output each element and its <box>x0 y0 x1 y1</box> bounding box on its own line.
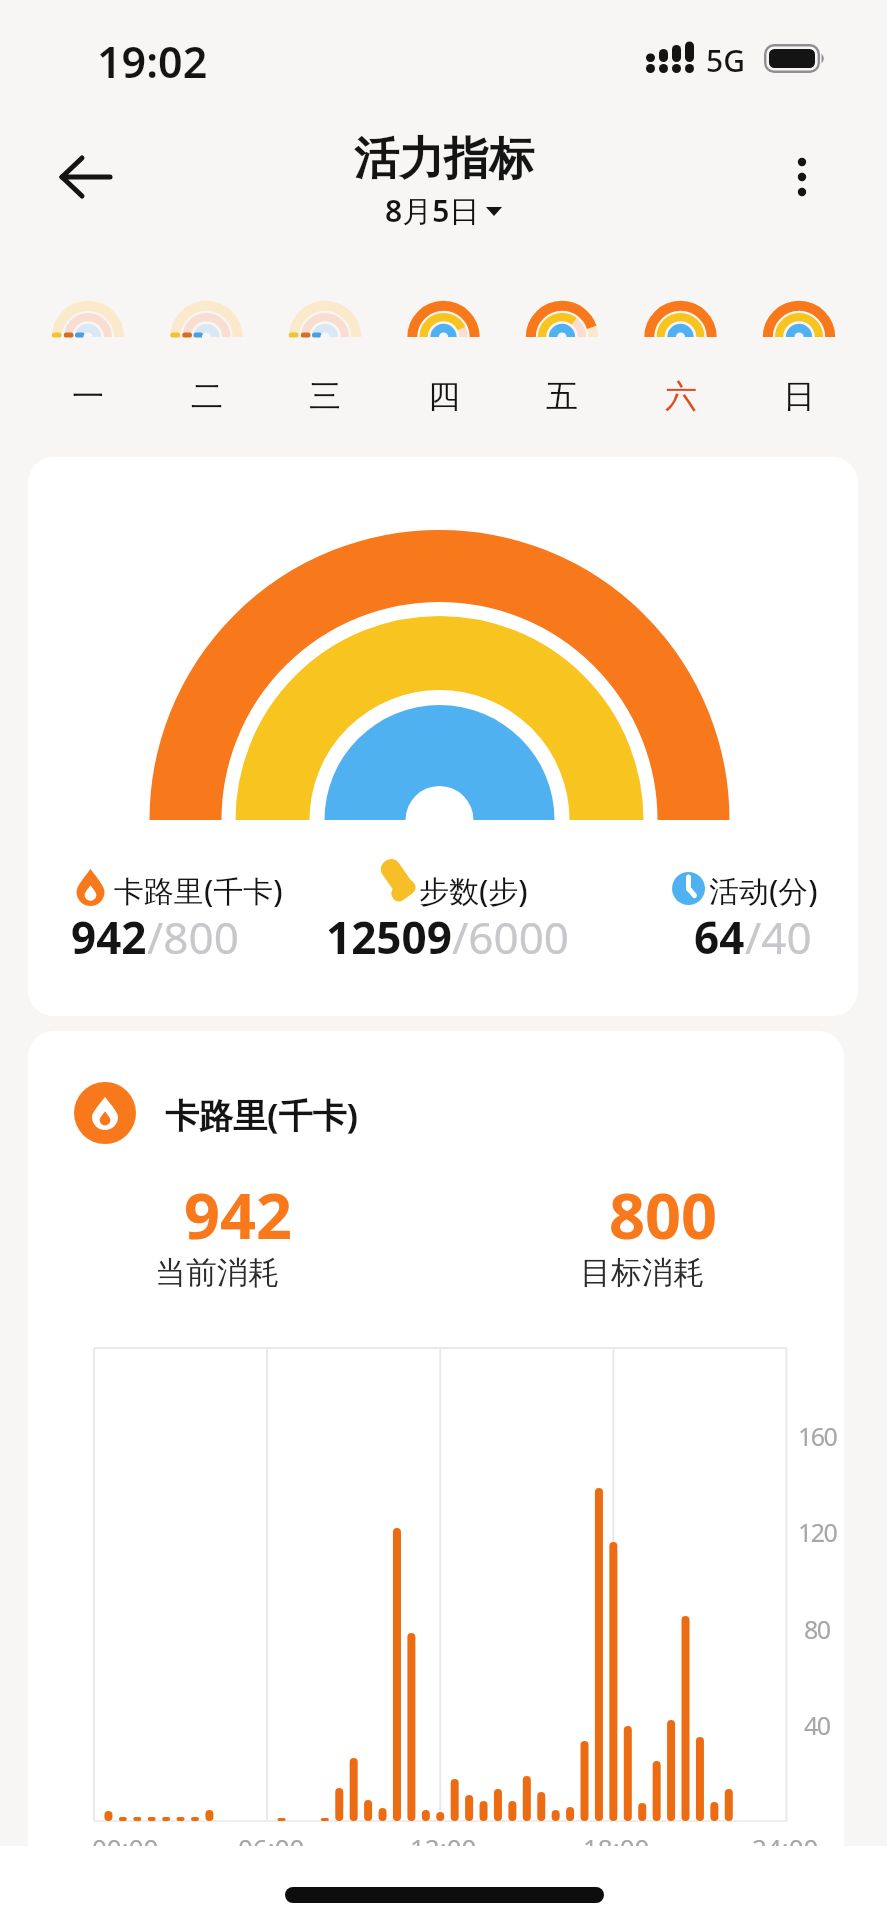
button[interactable]: 六 <box>641 374 721 418</box>
staticText: 目标消耗 <box>580 1253 704 1292</box>
staticText: 19:02 <box>97 32 208 91</box>
staticText: 06:00 <box>238 1830 305 1865</box>
staticText: 942 <box>71 907 147 967</box>
staticText: 80 <box>804 1612 830 1646</box>
staticText: 18:00 <box>583 1830 650 1865</box>
button[interactable]: 四 <box>404 374 484 418</box>
staticText: 卡路里(千卡) <box>114 870 283 911</box>
staticText: 12:00 <box>410 1830 477 1865</box>
staticText: 5G <box>706 40 745 81</box>
button[interactable] <box>778 150 826 206</box>
staticText: 当前消耗 <box>155 1253 279 1292</box>
staticText: 活动(分) <box>709 870 818 911</box>
button[interactable]: 五 <box>522 374 602 418</box>
staticText: 卡路里(千卡) <box>165 1092 359 1138</box>
staticText: 160 <box>798 1419 837 1453</box>
staticText: 三 <box>309 376 341 416</box>
staticText: 步数(步) <box>419 870 528 911</box>
button[interactable] <box>48 146 120 208</box>
button[interactable]: 三 <box>285 374 365 418</box>
staticText: 120 <box>798 1515 837 1549</box>
staticText: 00:00 <box>92 1830 159 1865</box>
button[interactable]: 日 <box>759 374 839 418</box>
staticText: /6000 <box>452 907 570 967</box>
button[interactable]: 8月5日 <box>385 190 502 231</box>
button[interactable]: 二 <box>167 374 247 418</box>
staticText: 日 <box>783 376 815 416</box>
staticText: 一 <box>72 376 104 416</box>
staticText: 五 <box>546 376 578 416</box>
staticText: 24:00 <box>752 1830 819 1865</box>
staticText: /40 <box>745 907 812 967</box>
staticText: 12509 <box>326 907 452 967</box>
staticText: 942 <box>184 1172 293 1258</box>
staticText: 六 <box>665 376 697 416</box>
staticText: 800 <box>609 1172 718 1258</box>
staticText: 40 <box>804 1708 830 1742</box>
button[interactable]: 一 <box>48 374 128 418</box>
staticText: 四 <box>428 376 460 416</box>
staticText: 64 <box>694 907 745 967</box>
staticText: 活力指标 <box>354 131 534 188</box>
staticText: 8月5日 <box>385 190 480 231</box>
staticText: 二 <box>191 376 223 416</box>
staticText: /800 <box>147 907 239 967</box>
